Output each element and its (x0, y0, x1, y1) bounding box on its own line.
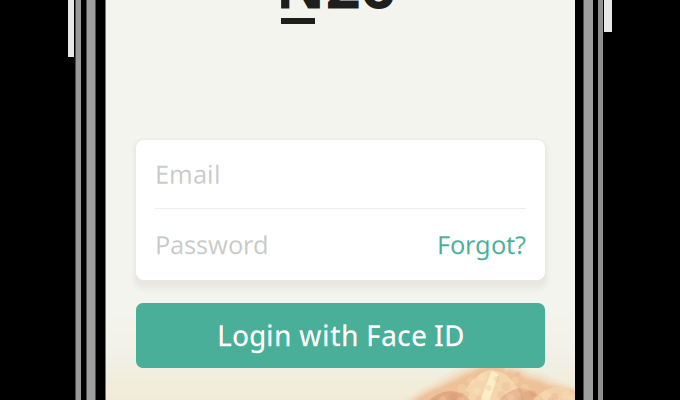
button[interactable]: Login with Face ID (136, 303, 545, 368)
staticText: N26 (275, 0, 395, 25)
staticText: Forgot? (437, 228, 526, 261)
button[interactable]: Forgot? (437, 228, 526, 261)
staticText: Email (155, 157, 221, 191)
staticText: Login with Face ID (217, 317, 464, 354)
staticText: Password (155, 228, 269, 261)
